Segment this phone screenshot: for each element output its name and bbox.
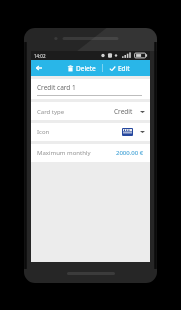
staticText: Delete bbox=[76, 64, 96, 73]
staticText: Maximum monthly bbox=[37, 149, 91, 157]
button[interactable]: Card type bbox=[31, 102, 150, 120]
button[interactable]: Maximum monthly bbox=[31, 144, 150, 162]
button[interactable]: Back bbox=[31, 60, 47, 76]
staticText: Card type bbox=[37, 108, 65, 116]
button[interactable]: Credit card 1 bbox=[31, 79, 150, 99]
staticText: 14:02 bbox=[34, 53, 46, 59]
button[interactable]: Edit bbox=[107, 64, 132, 73]
staticText: Icon bbox=[37, 128, 50, 136]
staticText: Edit bbox=[118, 64, 130, 73]
staticText: Credit card 1 bbox=[37, 83, 76, 92]
button[interactable]: Delete bbox=[65, 64, 98, 73]
staticText: 2000.00 € bbox=[116, 149, 144, 157]
staticText: Credit bbox=[114, 107, 133, 116]
button[interactable]: Icon bbox=[31, 123, 150, 141]
